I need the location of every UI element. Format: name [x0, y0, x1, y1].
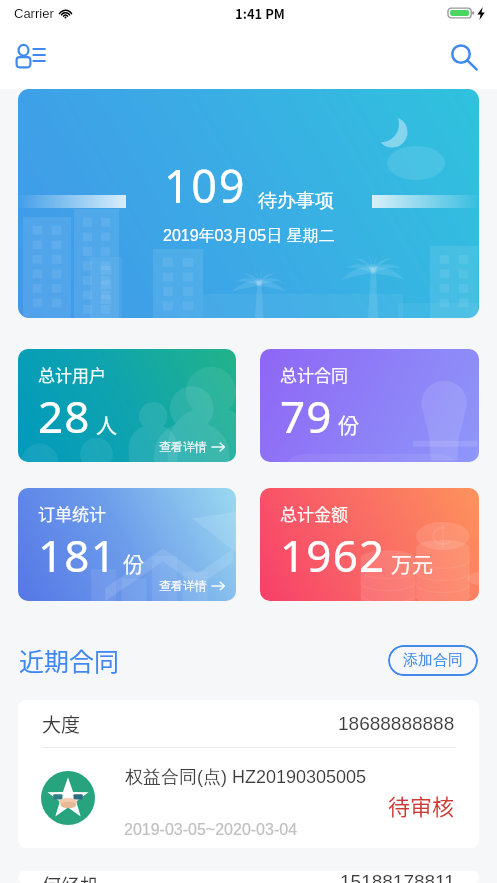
staticText: 181: [38, 525, 118, 585]
staticText: 待审核: [388, 789, 455, 821]
button[interactable]: Search: [441, 35, 487, 81]
button[interactable]: 订单统计: [18, 488, 236, 601]
staticText: 查看详情: [159, 578, 207, 593]
staticText: 总计金额: [280, 501, 348, 526]
staticText: 1:41 PM: [235, 4, 285, 23]
button[interactable]: 总计合同: [260, 349, 479, 462]
button[interactable]: 总计用户: [18, 349, 236, 462]
button[interactable]: 添加合同: [388, 645, 478, 676]
button[interactable]: 何经机: [18, 871, 479, 883]
staticText: 订单统计: [38, 501, 106, 526]
button[interactable]: 总计金额: [260, 488, 479, 601]
staticText: 总计合同: [280, 362, 348, 387]
staticText: Carrier: [14, 6, 54, 21]
staticText: 人: [96, 409, 117, 439]
staticText: 权益合同(点) HZ20190305005: [125, 766, 367, 789]
button[interactable]: 查看详情: [159, 578, 236, 601]
staticText: 大度: [42, 710, 81, 738]
staticText: 109: [164, 155, 247, 216]
staticText: 近期合同: [19, 642, 120, 678]
staticText: 总计用户: [38, 362, 106, 387]
staticText: 待办事项: [258, 189, 334, 213]
staticText: 何经机: [42, 871, 100, 883]
staticText: 28: [38, 386, 91, 446]
button[interactable]: 查看详情: [159, 439, 236, 462]
staticText: 查看详情: [159, 439, 207, 454]
button[interactable]: 109: [18, 89, 479, 318]
staticText: 79: [280, 386, 333, 446]
staticText: 份: [338, 409, 359, 439]
staticText: 份: [123, 548, 144, 578]
staticText: 添加合同: [403, 651, 463, 670]
button[interactable]: Contacts: [8, 35, 54, 81]
staticText: 1962: [280, 525, 386, 585]
button[interactable]: 大度: [18, 700, 479, 848]
staticText: 15188178811: [340, 871, 455, 883]
staticText: 2019年03月05日 星期二: [163, 226, 335, 246]
staticText: 万元: [391, 548, 433, 578]
staticText: 2019-03-05~2020-03-04: [124, 821, 298, 839]
staticText: 18688888888: [338, 713, 455, 734]
